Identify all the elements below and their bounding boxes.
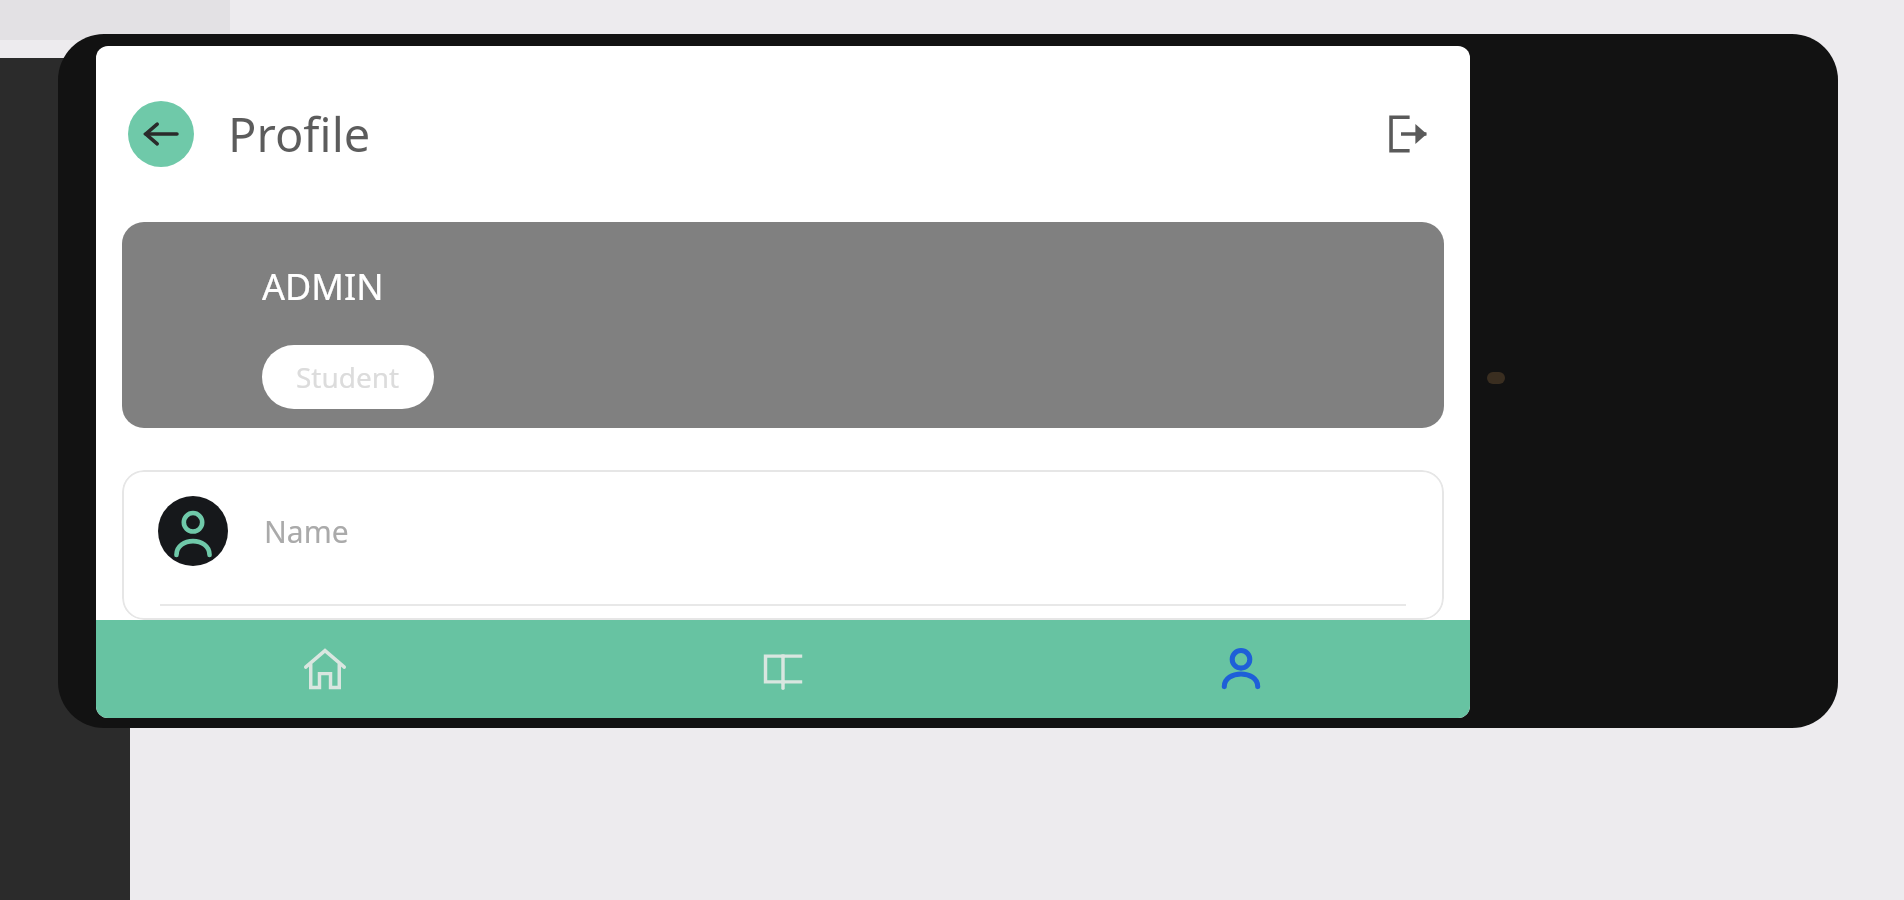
staticText: ADMIN [262,262,384,311]
staticText: Name [264,511,349,552]
button[interactable]: Logout [1376,103,1438,165]
button[interactable]: Library [554,620,1012,718]
button[interactable]: Name [122,470,1444,566]
staticText: Profile [228,102,371,166]
button[interactable]: Home [96,620,554,718]
staticText: Student [296,358,400,396]
button[interactable]: ADMIN [122,222,1444,428]
button[interactable]: Profile [1012,620,1470,718]
button[interactable]: Back [128,101,194,167]
